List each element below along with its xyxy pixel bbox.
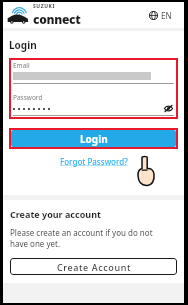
staticText: Password (13, 93, 43, 102)
button[interactable] (13, 72, 174, 81)
button[interactable]: Change language (147, 8, 174, 23)
button[interactable]: Create Account (10, 258, 177, 275)
staticText: Forgot Password? (60, 156, 128, 167)
staticText: connect (33, 11, 81, 27)
button[interactable]: Show password (163, 104, 174, 113)
staticText: EN (161, 10, 172, 21)
staticText: Please create an account if you do not (10, 227, 153, 238)
staticText: Create your account (10, 208, 101, 220)
staticText: Login (9, 38, 37, 52)
staticText: Login (80, 132, 108, 146)
staticText: have one yet. (10, 238, 61, 249)
staticText: Email (13, 61, 30, 70)
button[interactable] (13, 108, 53, 110)
staticText: SUZUKI (33, 3, 56, 10)
button[interactable]: Login (11, 130, 176, 147)
button[interactable]: Forgot Password? (60, 156, 128, 167)
staticText: Create Account (57, 261, 131, 273)
